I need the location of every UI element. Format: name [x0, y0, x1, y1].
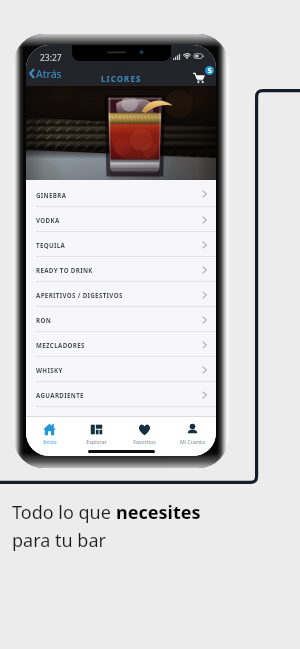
staticText: AGUARDIENTE [36, 391, 84, 399]
staticText: Favoritos [133, 438, 156, 445]
staticText: Mi Cuenta [180, 438, 205, 445]
button[interactable]: Inicio [26, 417, 73, 445]
staticText: LICORES [101, 73, 142, 84]
button[interactable]: READY TO DRINK [26, 257, 216, 282]
staticText: READY TO DRINK [36, 266, 93, 274]
button[interactable]: APERITIVOS / DIGESTIVOS [26, 282, 216, 307]
button[interactable]: RON [26, 307, 216, 332]
staticText: necesites [116, 500, 201, 525]
staticText: MEZCLADORES [36, 341, 85, 349]
button[interactable]: MEZCLADORES [26, 332, 216, 357]
button[interactable]: Atrás [26, 65, 68, 82]
staticText: RON [36, 316, 52, 324]
staticText: GINEBRA [36, 191, 67, 199]
button[interactable]: GINEBRA [26, 180, 216, 207]
staticText: VODKA [36, 216, 60, 224]
button[interactable]: Favoritos [120, 417, 168, 445]
staticText: Atrás [36, 67, 62, 81]
staticText: WHISKY [36, 366, 63, 374]
button[interactable]: Mi Cuenta [168, 417, 216, 445]
staticText: Inicio [43, 438, 57, 445]
staticText: 5 [208, 66, 212, 75]
staticText: Explorar [86, 438, 107, 445]
button[interactable]: Carrito de compras [191, 65, 215, 82]
button[interactable]: AGUARDIENTE [26, 382, 216, 407]
staticText: TEQUILA [36, 241, 66, 249]
button[interactable]: WHISKY [26, 357, 216, 382]
button[interactable]: VODKA [26, 207, 216, 232]
staticText: Todo lo que [12, 500, 116, 525]
staticText: APERITIVOS / DIGESTIVOS [36, 291, 123, 299]
button[interactable]: TEQUILA [26, 232, 216, 257]
button[interactable]: Explorar [73, 417, 120, 445]
staticText: 23:27 [40, 52, 62, 64]
staticText: para tu bar [12, 528, 106, 553]
